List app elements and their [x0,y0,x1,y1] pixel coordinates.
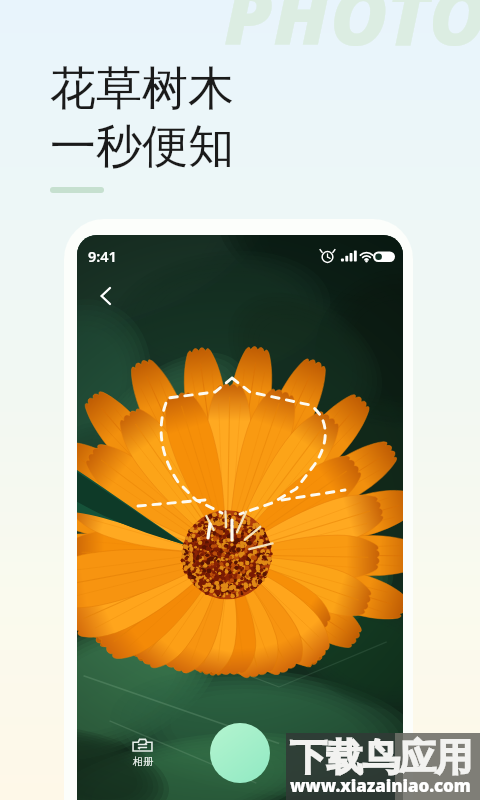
staticText: www.xiazainiao.com [290,774,471,794]
button[interactable]: Shutter [210,723,270,783]
staticText: 9:41 [88,246,117,266]
staticText: 花草树木 一秒便知 [50,60,234,175]
button[interactable]: Back [85,275,127,317]
staticText: 下载鸟应用 [290,734,472,781]
staticText: PHOTO [224,0,480,68]
staticText: 相册 [133,755,153,768]
button[interactable]: 相册 [132,738,153,768]
